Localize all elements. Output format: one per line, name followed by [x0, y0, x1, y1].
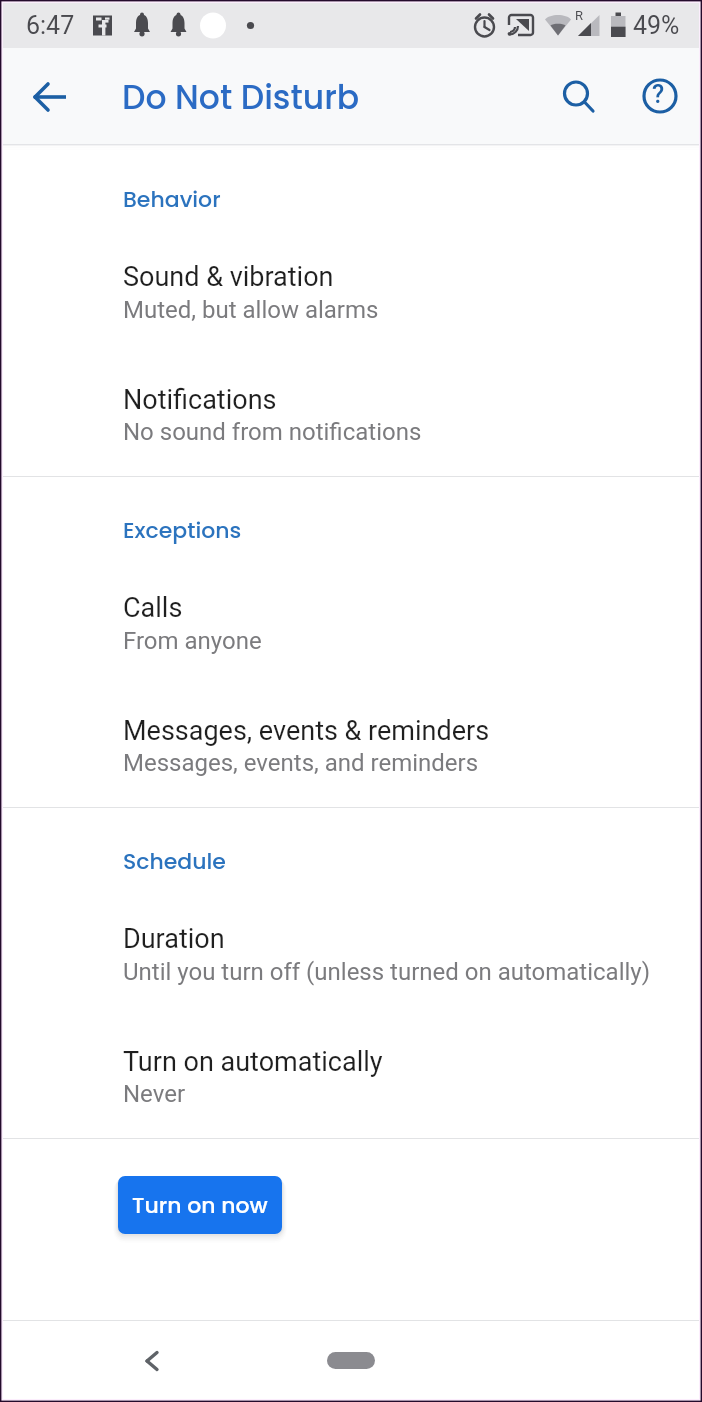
staticText: 49%	[633, 11, 680, 40]
staticText: Until you turn off (unless turned on aut…	[123, 958, 651, 986]
staticText: Sound & vibration	[123, 261, 334, 293]
button[interactable]: Navigate up	[22, 69, 78, 125]
staticText: Turn on automatically	[123, 1046, 383, 1078]
button[interactable]: Sound & vibration	[0, 218, 702, 367]
button[interactable]: Search	[551, 70, 607, 126]
button[interactable]: Duration	[0, 880, 702, 1029]
staticText: Never	[123, 1080, 186, 1108]
staticText: Behavior	[123, 184, 221, 215]
button[interactable]: Messages, events & reminders	[0, 698, 702, 803]
staticText: From anyone	[123, 627, 262, 655]
staticText: Duration	[123, 923, 225, 955]
staticText: Do Not Disturb	[122, 74, 360, 120]
button[interactable]: Back	[128, 1337, 176, 1385]
staticText: Messages, events, and reminders	[123, 749, 479, 777]
staticText: Schedule	[123, 846, 226, 877]
button[interactable]: Home	[327, 1352, 375, 1369]
staticText: Messages, events & reminders	[123, 715, 490, 747]
staticText: No sound from notifications	[123, 418, 422, 446]
button[interactable]: Help	[632, 68, 688, 124]
button[interactable]: Calls	[0, 549, 702, 698]
button[interactable]: Turn on now	[118, 1176, 282, 1234]
staticText: Notifications	[123, 384, 277, 416]
staticText: Calls	[123, 592, 183, 624]
button[interactable]: Turn on automatically	[0, 1029, 702, 1134]
staticText: Muted, but allow alarms	[123, 296, 379, 324]
staticText: ?	[652, 80, 665, 109]
staticText: R	[575, 8, 584, 23]
staticText: 6:47	[26, 11, 75, 40]
staticText: Turn on now	[132, 1190, 268, 1221]
staticText: Exceptions	[123, 515, 242, 546]
button[interactable]: Notifications	[0, 367, 702, 472]
